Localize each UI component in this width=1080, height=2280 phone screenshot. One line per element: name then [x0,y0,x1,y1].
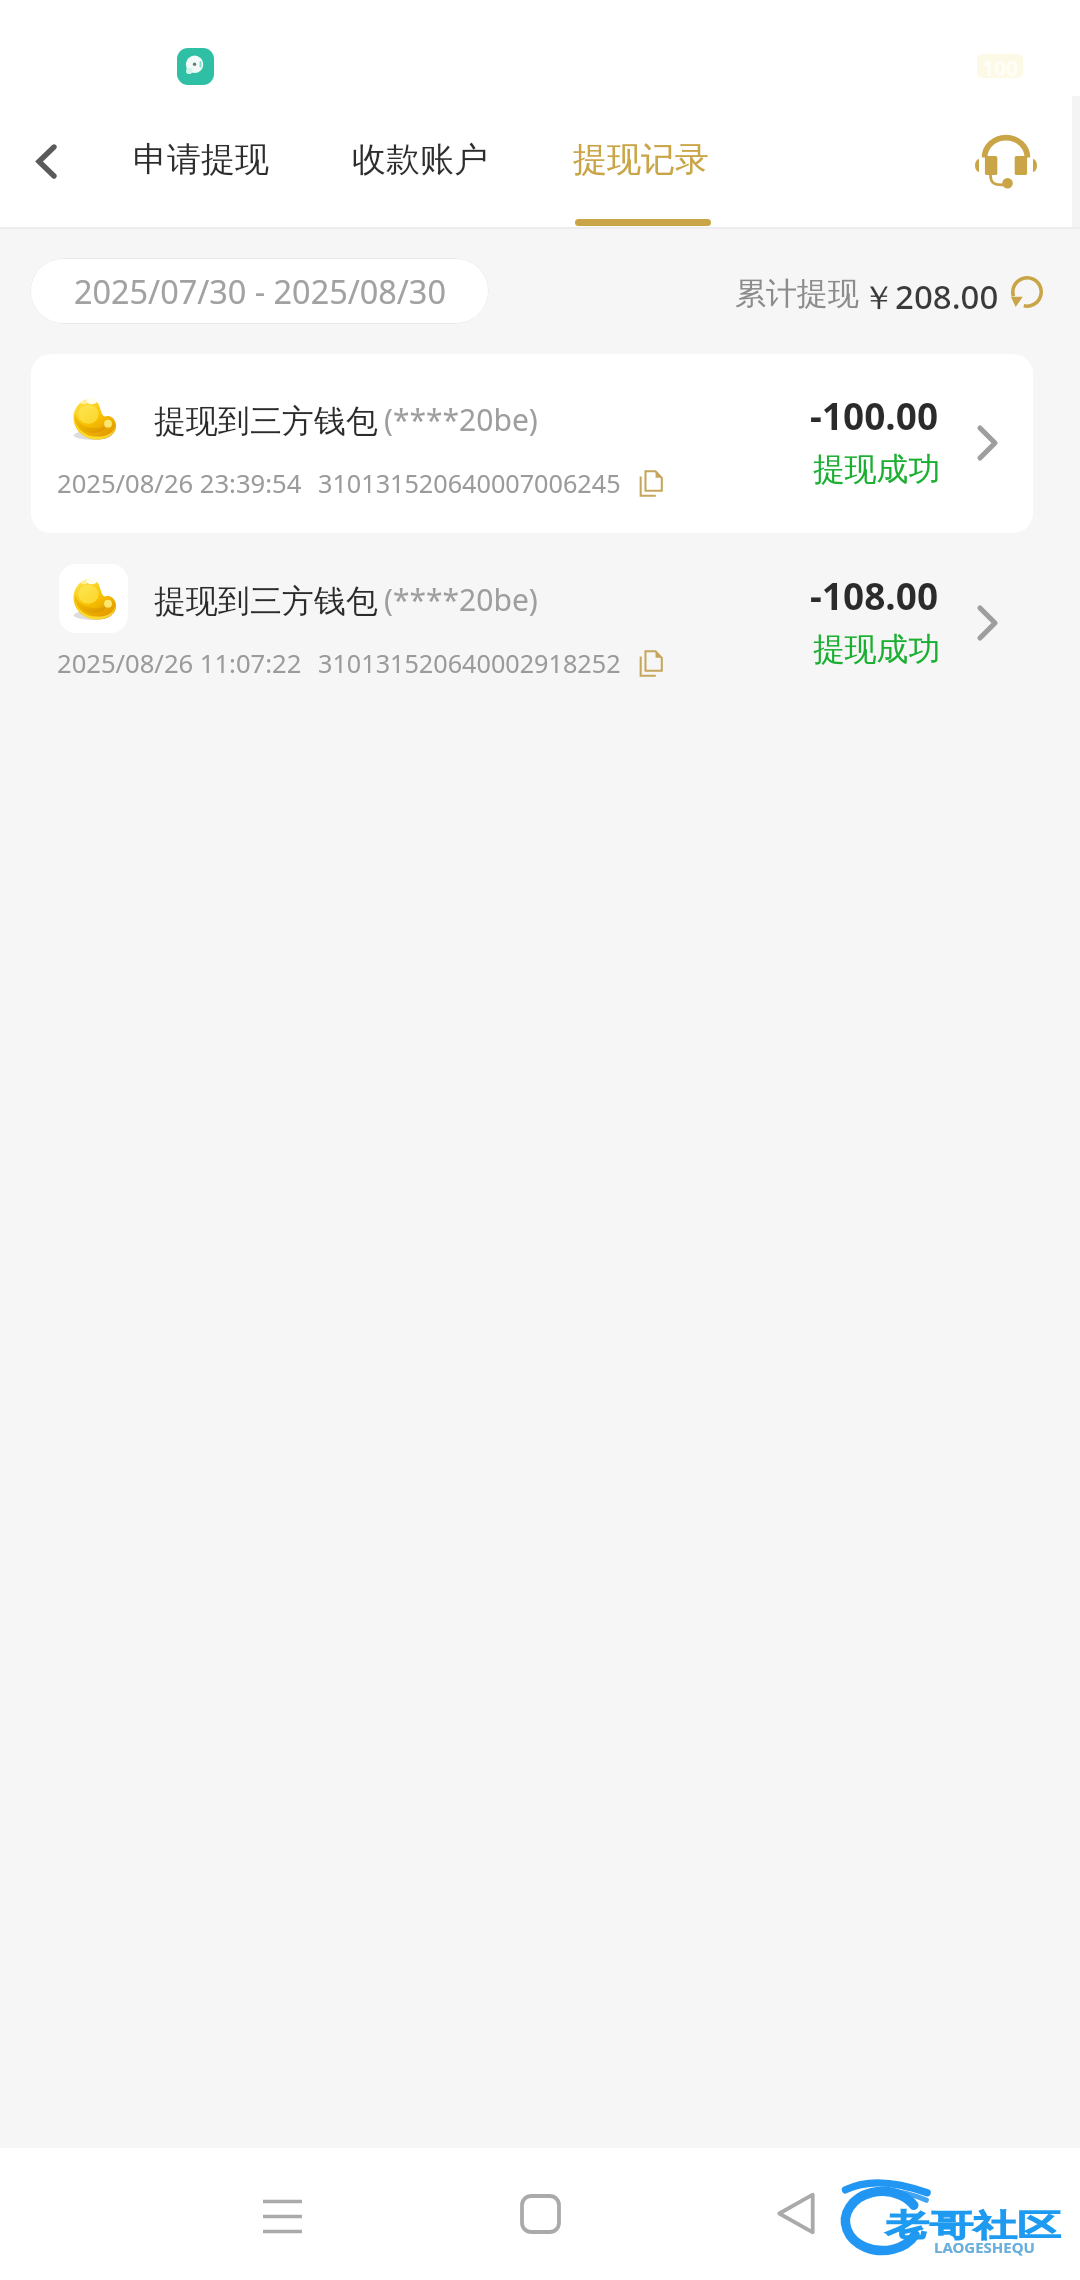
staticText: 收款账户 [352,138,488,181]
button[interactable]: 收款账户 [334,116,504,227]
button[interactable] [31,534,1033,713]
button[interactable]: Refresh [1002,267,1052,317]
staticText: 提现到三方钱包 [154,581,378,621]
button[interactable]: Recent apps [243,2177,321,2255]
staticText: 提现成功 [813,629,941,669]
staticText: 100 [982,54,1019,78]
staticText: 累计提现 [735,274,859,313]
staticText: 提现记录 [573,138,709,181]
button[interactable]: Back [10,125,82,197]
staticText: 310131520640002918252 [318,646,621,680]
staticText: (****20be) [384,579,538,620]
button[interactable]: 2025/07/30 - 2025/08/30 [30,258,489,324]
button[interactable]: 提现记录 [555,116,725,227]
staticText: 提现成功 [813,449,941,489]
staticText: 2025/08/26 11:07:22 [57,646,302,681]
staticText: -108.00 [810,570,939,620]
button[interactable]: Home [501,2175,579,2253]
button[interactable]: Copy order number [632,464,670,502]
staticText: -100.00 [810,390,939,440]
staticText: 310131520640007006245 [318,466,621,500]
staticText: 老哥社区 [885,2207,1061,2245]
button[interactable]: Customer service [956,111,1056,211]
button[interactable]: Copy order number [632,644,670,682]
staticText: (****20be) [384,399,538,440]
button[interactable] [31,354,1033,533]
button[interactable]: 申请提现 [115,116,285,227]
staticText: 申请提现 [133,138,269,181]
staticText: ￥208.00 [862,274,999,319]
button[interactable]: Back [757,2174,835,2252]
staticText: 2025/07/30 - 2025/08/30 [74,269,446,313]
staticText: LAOGESHEQU [934,2237,1035,2257]
staticText: 2025/08/26 23:39:54 [57,466,302,501]
staticText: 提现到三方钱包 [154,401,378,441]
